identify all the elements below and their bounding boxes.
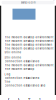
staticText: ‹ bbox=[7, 96, 9, 100]
staticText: ↑ bbox=[27, 97, 30, 100]
staticText: The modern desktop environment bbox=[4, 47, 53, 50]
staticText: The bbox=[4, 80, 10, 83]
staticText: The modern desktop environmen bbox=[4, 43, 52, 46]
staticText: The modern desktop environment bbox=[4, 36, 53, 39]
staticText: Still online bbox=[4, 56, 21, 59]
staticText: The modern desktop bbox=[4, 67, 34, 70]
staticText: ▯ bbox=[38, 97, 40, 100]
staticText: Connection established and bbox=[4, 84, 45, 87]
staticText: Still online bbox=[4, 51, 21, 54]
staticText: example.com bbox=[20, 1, 35, 4]
staticText: › bbox=[17, 96, 19, 100]
staticText: Connection established bbox=[4, 60, 39, 63]
staticText: Log bbox=[4, 73, 10, 76]
staticText: The modern desktop environment bbox=[4, 39, 53, 43]
staticText: Connection established bbox=[4, 76, 39, 79]
staticText: The modern desktop environment bbox=[4, 64, 53, 67]
